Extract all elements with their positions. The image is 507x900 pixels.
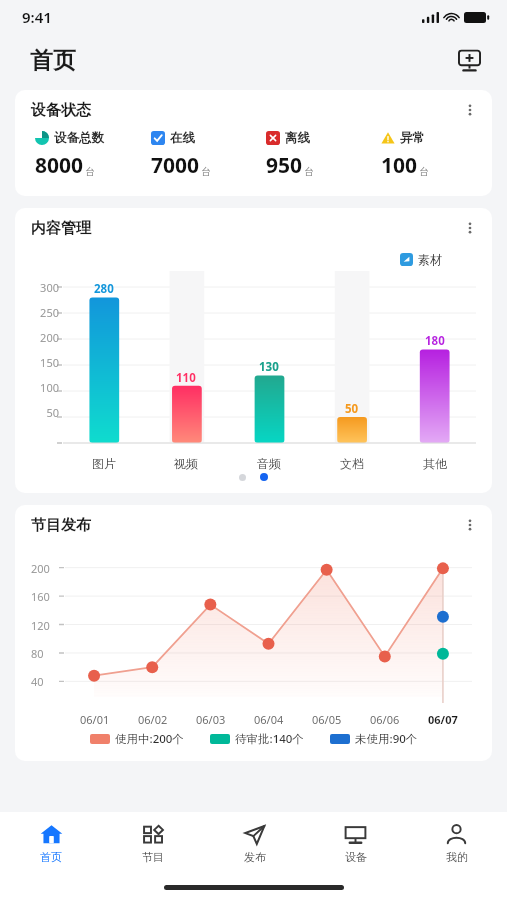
button[interactable]: 我的 [406,812,507,874]
button[interactable] [260,473,268,481]
staticText: 其他 [423,456,447,471]
staticText: 台 [304,165,314,178]
staticText: 06/05 [312,712,342,727]
staticText: 250 [40,305,59,320]
staticText: 节目发布 [31,516,91,535]
staticText: 950 [266,151,303,180]
button[interactable]: 使用中:200个 [90,731,184,747]
staticText: 离线 [285,130,310,146]
button[interactable]: 待审批:140个 [210,731,304,747]
staticText: 首页 [30,46,76,75]
staticText: 待审批:140个 [235,731,304,747]
staticText: 台 [419,165,429,178]
button[interactable]: 在线 [141,130,256,180]
staticText: 视频 [174,456,198,471]
button[interactable]: 设备 [305,812,406,874]
staticText: 280 [94,281,114,297]
staticText: 台 [201,165,211,178]
staticText: 06/04 [254,712,284,727]
button[interactable]: 未使用:90个 [330,731,418,747]
staticText: 设备状态 [31,101,91,120]
button[interactable]: More options [456,96,484,124]
staticText: 50 [46,405,59,420]
staticText: 节目 [142,850,164,864]
staticText: 50 [345,401,359,417]
staticText: 06/02 [138,712,168,727]
staticText: 台 [85,165,95,178]
staticText: 首页 [40,850,62,864]
staticText: 110 [176,370,196,386]
staticText: 未使用:90个 [355,731,418,747]
staticText: 06/01 [80,712,110,727]
staticText: 文档 [340,456,364,471]
staticText: 8000 [35,151,84,180]
staticText: 设备 [345,850,367,864]
staticText: 120 [31,618,50,633]
staticText: 音频 [257,456,281,471]
staticText: 100 [40,380,59,395]
staticText: 图片 [92,456,116,471]
staticText: 150 [40,355,59,370]
button[interactable]: 发布 [204,812,305,874]
staticText: 300 [40,280,59,295]
staticText: 06/03 [196,712,226,727]
staticText: 06/07 [428,712,458,727]
staticText: 80 [31,646,44,661]
button[interactable]: 素材 [396,248,446,271]
button[interactable]: More options [456,214,484,242]
button[interactable]: Add device [451,42,487,78]
button[interactable]: 异常 [371,130,486,180]
staticText: 130 [259,359,279,375]
button[interactable] [239,474,246,481]
staticText: 40 [31,674,44,689]
staticText: 异常 [400,130,425,146]
staticText: 使用中:200个 [115,731,184,747]
staticText: 在线 [170,130,195,146]
staticText: 200 [40,330,59,345]
staticText: 06/06 [370,712,400,727]
button[interactable]: 设备总数 [25,130,141,180]
staticText: 100 [381,151,418,180]
button[interactable]: 首页 [0,812,102,874]
button[interactable]: 节目 [102,812,204,874]
staticText: 160 [31,589,50,604]
staticText: 7000 [151,151,200,180]
staticText: 内容管理 [31,219,91,238]
staticText: 我的 [446,850,468,864]
staticText: 设备总数 [54,130,104,146]
staticText: 200 [31,561,50,576]
staticText: 180 [425,333,445,349]
staticText: 发布 [244,850,266,864]
staticText: 素材 [418,252,442,267]
staticText: 9:41 [22,7,52,27]
button[interactable]: More options [456,511,484,539]
button[interactable]: 离线 [256,130,371,180]
